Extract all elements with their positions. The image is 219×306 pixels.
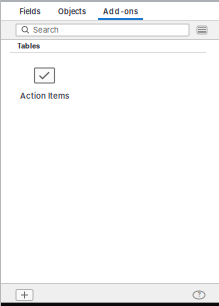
staticText: ? [197,291,200,298]
staticText: Tables [17,42,40,50]
button[interactable]: Help [192,288,206,298]
button[interactable]: List view [197,26,207,34]
staticText: Search [33,25,59,35]
button[interactable]: Add-ons [98,2,143,20]
staticText: Action Items [20,91,69,101]
button[interactable]: Objects [57,2,87,20]
button[interactable]: Fields [18,2,42,20]
button[interactable]: Action Items [20,68,69,101]
staticText: Add-ons [103,7,138,16]
staticText: Fields [19,7,40,16]
staticText: Objects [58,7,86,16]
button[interactable]: Search [16,24,189,36]
button[interactable]: Add [16,287,33,298]
